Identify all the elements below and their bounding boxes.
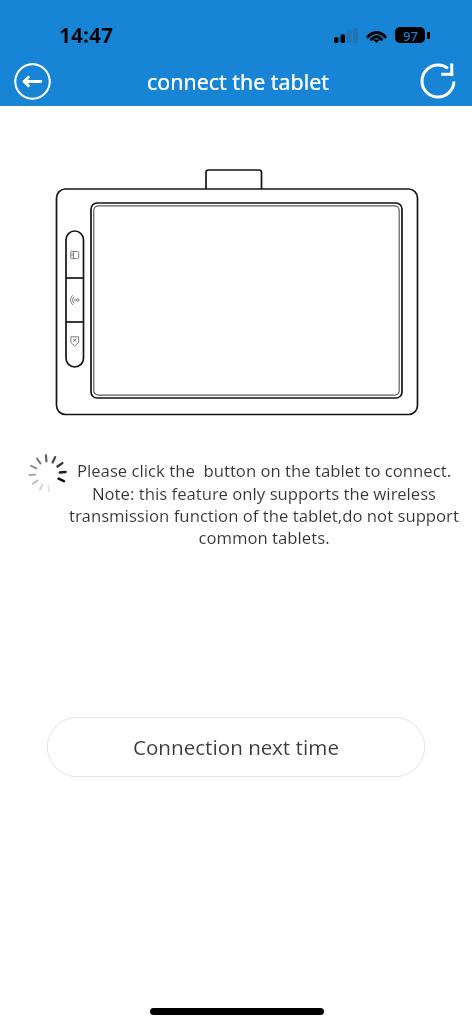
staticText: 97 bbox=[403, 27, 418, 43]
staticText: Please click the button on the tablet to… bbox=[66, 459, 462, 547]
staticText: connect the tablet bbox=[147, 67, 330, 96]
button[interactable]: Connection next time bbox=[47, 717, 425, 777]
button[interactable]: Back bbox=[14, 63, 51, 100]
staticText: 14:47 bbox=[59, 21, 113, 50]
staticText: Connection next time bbox=[133, 733, 340, 761]
button[interactable]: Refresh bbox=[420, 62, 458, 100]
